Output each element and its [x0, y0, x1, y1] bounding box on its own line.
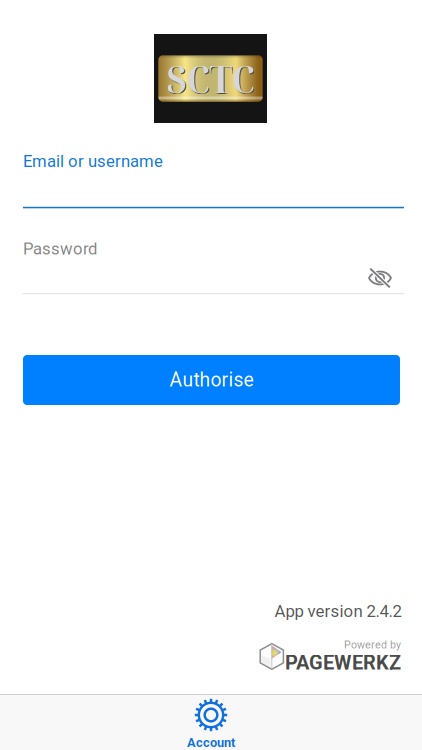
staticText: Email or username — [23, 151, 163, 171]
staticText: PAGEWERKZ — [285, 651, 401, 674]
staticText: Password — [23, 239, 97, 258]
staticText: App version 2.4.2 — [274, 601, 401, 621]
staticText: Authorise — [169, 369, 253, 391]
staticText: SCTC — [166, 53, 254, 104]
staticText: SCTC — [167, 54, 255, 105]
button[interactable]: Account — [0, 695, 422, 750]
staticText: Account — [187, 735, 235, 750]
button[interactable]: Authorise — [23, 355, 400, 405]
staticText: Powered by — [344, 638, 401, 651]
button[interactable]: Show password — [360, 261, 400, 295]
